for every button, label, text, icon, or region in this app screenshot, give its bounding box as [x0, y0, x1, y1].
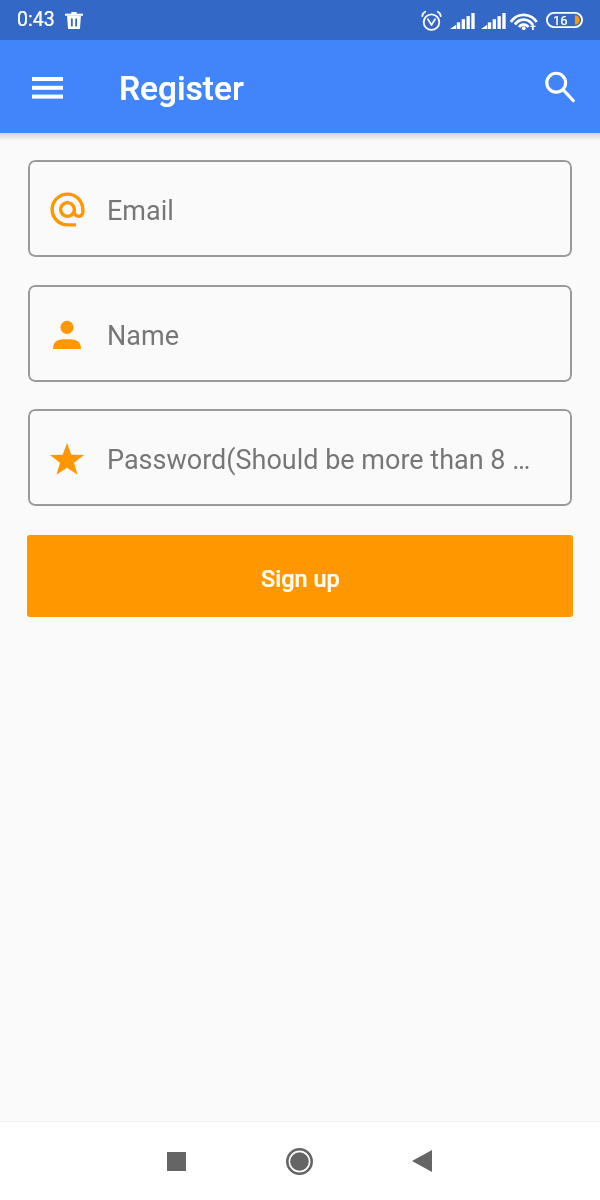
button[interactable]: Home — [263, 1125, 335, 1197]
button[interactable]: Search — [527, 55, 591, 119]
staticText: Name — [107, 320, 179, 352]
staticText: Sign up — [261, 565, 340, 593]
button[interactable]: Email — [28, 160, 572, 257]
staticText: Email — [107, 195, 174, 227]
button[interactable]: Recents — [140, 1125, 212, 1197]
staticText: Password(Should be more than 8 … — [107, 444, 531, 476]
button[interactable]: Sign up — [27, 535, 573, 617]
staticText: 0:43 — [17, 8, 55, 31]
button[interactable]: Password(Should be more than 8 … — [28, 409, 572, 506]
button[interactable]: Back — [386, 1125, 458, 1197]
button[interactable]: Name — [28, 285, 572, 382]
staticText: 16 — [553, 13, 568, 28]
staticText: Register — [119, 69, 244, 108]
button[interactable]: Open navigation menu — [15, 55, 79, 119]
